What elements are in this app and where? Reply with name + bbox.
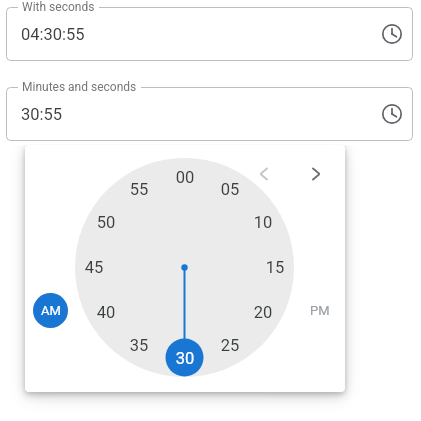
staticText: 30 [167, 349, 203, 368]
staticText: 20 [245, 303, 281, 322]
button[interactable]: Next [301, 159, 331, 189]
staticText: With seconds [22, 0, 95, 14]
staticText: 35 [121, 336, 157, 355]
staticText: 05 [212, 180, 248, 199]
staticText: Minutes and seconds [22, 80, 137, 94]
staticText: 00 [167, 168, 203, 187]
button[interactable]: 04:30:55 [6, 7, 413, 61]
staticText: PM [310, 303, 330, 318]
button[interactable]: Open time picker [377, 99, 407, 129]
staticText: 40 [88, 303, 124, 322]
staticText: 30:55 [21, 105, 63, 124]
staticText: AM [41, 303, 61, 318]
staticText: 04:30:55 [21, 25, 85, 44]
button[interactable]: AM [33, 293, 68, 328]
staticText: 50 [88, 213, 124, 232]
button[interactable]: Open time picker [377, 19, 407, 49]
staticText: 15 [257, 258, 293, 277]
button[interactable]: Previous [249, 159, 279, 189]
staticText: 55 [121, 180, 157, 199]
staticText: 45 [76, 258, 112, 277]
button[interactable]: 30:55 [6, 87, 413, 141]
staticText: 25 [212, 336, 248, 355]
button[interactable]: PM [302, 293, 337, 328]
staticText: 10 [245, 213, 281, 232]
